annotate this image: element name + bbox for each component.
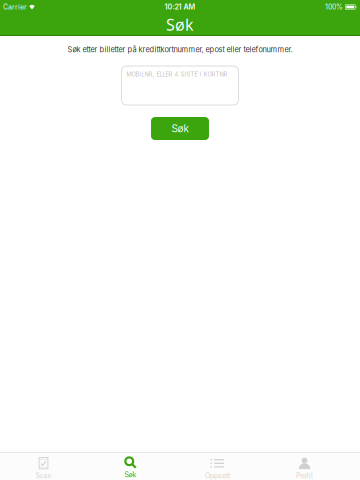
button[interactable]: Søk	[87, 452, 174, 480]
staticText: Søk etter billetter på kredittkortnummer…	[67, 45, 292, 54]
staticText: Søk	[171, 122, 188, 135]
staticText: Oppsett	[205, 471, 230, 480]
staticText: Søk	[166, 14, 194, 35]
staticText: Profil	[296, 471, 313, 480]
button[interactable]: Søk	[151, 117, 209, 140]
button[interactable]: Oppsett	[174, 452, 261, 480]
staticText: 100%	[325, 3, 343, 11]
staticText: Carrier	[3, 3, 27, 11]
staticText: 10:21 AM	[164, 3, 195, 11]
button[interactable]: Scan	[0, 452, 87, 480]
staticText: MOBILNR, ELLER 4 SISTE I KORTNR	[126, 71, 227, 78]
button[interactable]: MOBILNR, ELLER 4 SISTE I KORTNR	[121, 66, 238, 105]
button[interactable]: Profil	[261, 452, 348, 480]
staticText: Scan	[35, 471, 51, 480]
staticText: Søk	[124, 470, 136, 479]
